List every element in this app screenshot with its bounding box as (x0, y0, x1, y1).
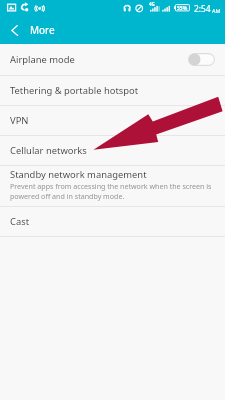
staticText: Prevent apps from accessing the network … (10, 181, 212, 201)
button[interactable]: Standby network management (0, 166, 225, 206)
staticText: AM (212, 7, 221, 14)
button[interactable]: Back (0, 17, 29, 44)
staticText: Airplane mode (10, 53, 75, 66)
button[interactable]: Cellular networks (0, 136, 225, 165)
staticText: 4G (149, 1, 155, 7)
staticText: Cast (10, 215, 30, 228)
button[interactable]: VPN (0, 106, 225, 135)
staticText: Standby network management (10, 168, 147, 181)
staticText: Cellular networks (10, 144, 87, 157)
staticText: 55% (177, 5, 188, 12)
button[interactable]: Airplane mode (0, 44, 225, 75)
staticText: Tethering & portable hotspot (10, 84, 139, 97)
staticText: More (30, 23, 55, 37)
staticText: VPN (10, 114, 29, 127)
button[interactable]: Cast (0, 207, 225, 236)
button[interactable]: Tethering & portable hotspot (0, 76, 225, 105)
staticText: 2:54 (194, 3, 211, 14)
